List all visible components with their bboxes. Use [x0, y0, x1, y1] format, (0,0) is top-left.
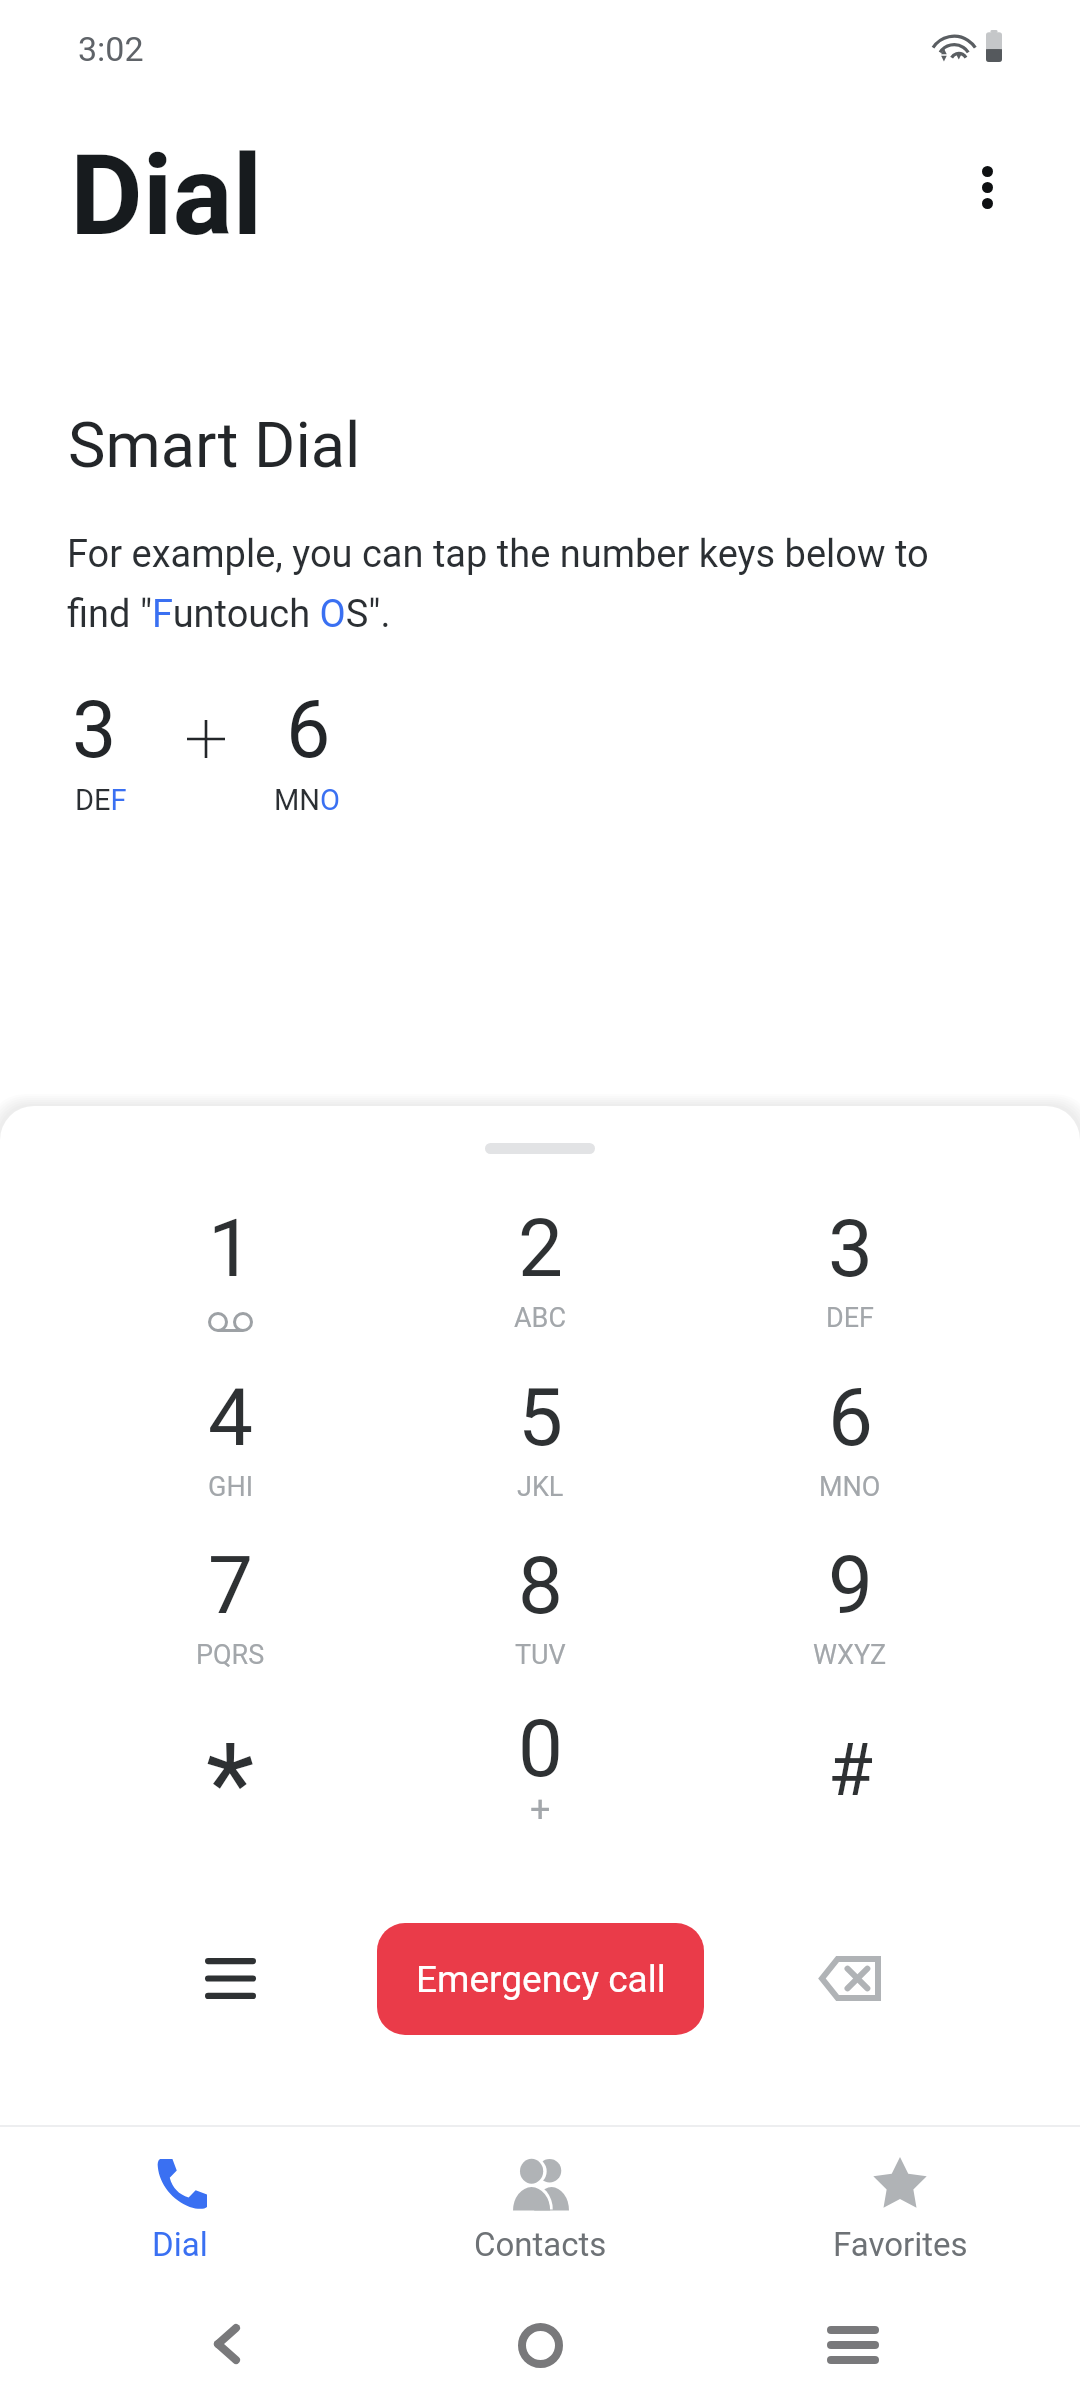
staticText: ABC	[514, 1302, 567, 1334]
button[interactable]: 2	[385, 1202, 695, 1370]
button[interactable]: Back	[182, 2299, 272, 2389]
staticText: For example, you can tap the number keys…	[67, 532, 962, 636]
staticText: #	[828, 1727, 873, 1813]
button[interactable]: 3	[695, 1202, 1005, 1370]
staticText: 4	[208, 1371, 253, 1465]
staticText: 0	[518, 1702, 563, 1796]
button[interactable]: Home	[495, 2300, 585, 2390]
staticText: 1	[208, 1202, 253, 1296]
button[interactable]: 4	[75, 1371, 385, 1539]
staticText: Dial	[152, 2225, 208, 2264]
button[interactable]: Dial	[0, 2127, 360, 2272]
staticText: *	[206, 1718, 255, 1849]
staticText: 5	[518, 1371, 563, 1465]
button[interactable]: 1	[75, 1202, 385, 1370]
staticText: +	[530, 1789, 551, 1831]
button[interactable]: Recents	[808, 2300, 898, 2390]
button[interactable]: Contacts	[360, 2127, 720, 2272]
staticText: 8	[518, 1539, 563, 1633]
button[interactable]: Favorites	[720, 2127, 1080, 2272]
staticText: JKL	[517, 1471, 564, 1503]
staticText: 6	[286, 684, 331, 777]
staticText: MNO	[274, 783, 340, 817]
staticText: WXYZ	[813, 1639, 887, 1671]
staticText: 7	[208, 1539, 253, 1633]
button[interactable]: Emergency call	[377, 1923, 704, 2035]
staticText: Dial	[70, 130, 263, 261]
staticText: Contacts	[474, 2225, 607, 2264]
staticText: 2	[518, 1202, 563, 1296]
staticText: Favorites	[833, 2225, 968, 2264]
staticText: DEF	[826, 1302, 874, 1334]
button[interactable]: *	[75, 1702, 385, 1870]
staticText: 9	[828, 1539, 873, 1633]
button[interactable]: 8	[385, 1539, 695, 1707]
staticText: Smart Dial	[68, 409, 361, 483]
staticText: PQRS	[196, 1639, 265, 1671]
staticText: 3	[72, 684, 117, 777]
button[interactable]: 9	[695, 1539, 1005, 1707]
staticText: 3	[828, 1202, 873, 1296]
button[interactable]: Dial pad options	[155, 1908, 305, 2048]
button[interactable]: More options	[942, 142, 1032, 232]
staticText: MNO	[819, 1471, 881, 1503]
button[interactable]: Backspace	[775, 1908, 925, 2048]
button[interactable]: 7	[75, 1539, 385, 1707]
button[interactable]: Collapse keypad	[420, 1120, 660, 1176]
button[interactable]: 5	[385, 1371, 695, 1539]
button[interactable]: 6	[695, 1371, 1005, 1539]
staticText: 3:02	[78, 29, 144, 69]
staticText: GHI	[208, 1471, 253, 1503]
staticText: TUV	[515, 1639, 566, 1671]
staticText: Emergency call	[416, 1958, 666, 2001]
button[interactable]: 0	[385, 1702, 695, 1870]
staticText: DEF	[75, 783, 127, 817]
button[interactable]: #	[695, 1702, 1005, 1870]
staticText: 6	[828, 1371, 873, 1465]
